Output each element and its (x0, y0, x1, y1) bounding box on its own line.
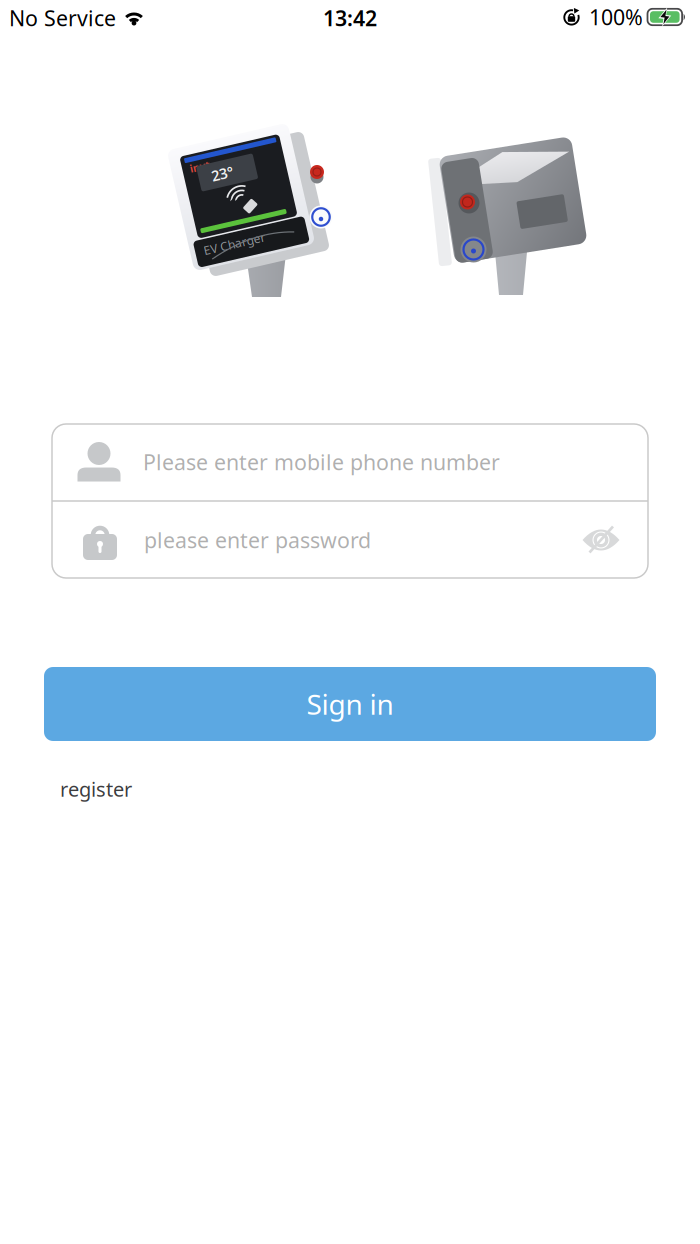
staticText: 100% (589, 3, 643, 31)
staticText: EV Charger (192, 233, 255, 249)
staticText: 23° (217, 160, 239, 180)
staticText: 13:42 (323, 4, 377, 32)
button[interactable]: Show password (573, 512, 629, 568)
button[interactable]: Mobile phone number (52, 424, 648, 499)
button[interactable]: Sign in (44, 667, 656, 741)
staticText: No Service (9, 4, 116, 32)
staticText: invt (197, 151, 218, 165)
staticText: please enter password (144, 526, 371, 554)
button[interactable]: register (60, 776, 132, 802)
staticText: register (60, 776, 132, 802)
staticText: Sign in (306, 685, 393, 723)
staticText: Please enter mobile phone number (143, 448, 500, 476)
button[interactable]: Password (52, 502, 648, 577)
